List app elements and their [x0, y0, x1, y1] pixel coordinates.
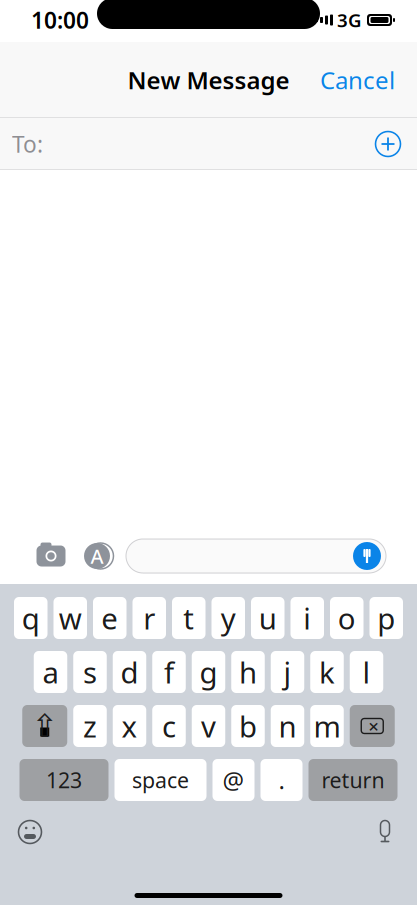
button[interactable]: s: [73, 651, 107, 693]
button[interactable]: .: [260, 759, 302, 801]
button[interactable]: @: [212, 759, 254, 801]
staticText: t: [183, 598, 194, 637]
staticText: q: [22, 598, 40, 637]
button[interactable]: c: [152, 705, 186, 747]
staticText: y: [221, 598, 236, 637]
staticText: l: [362, 652, 370, 691]
staticText: k: [319, 652, 335, 691]
button[interactable]: Send: [351, 540, 383, 572]
staticText: v: [201, 706, 216, 745]
staticText: To:: [12, 129, 43, 159]
staticText: return: [321, 766, 384, 794]
staticText: u: [259, 598, 277, 637]
button[interactable]: u: [251, 597, 284, 639]
button[interactable]: x: [113, 705, 146, 747]
button[interactable]: k: [310, 651, 344, 693]
button[interactable]: y: [211, 597, 245, 639]
button[interactable]: h: [231, 651, 265, 693]
button[interactable]: n: [271, 705, 304, 747]
staticText: 123: [46, 766, 82, 794]
button[interactable]: Delete: [350, 705, 395, 747]
button[interactable]: 123: [19, 759, 108, 801]
staticText: e: [101, 598, 118, 637]
staticText: New Message: [127, 64, 289, 96]
button[interactable]: Camera: [30, 535, 72, 577]
button[interactable]: Emoji: [8, 810, 52, 854]
button[interactable]: Dictation: [363, 810, 407, 854]
staticText: 3G: [337, 8, 362, 32]
staticText: o: [338, 598, 356, 637]
button[interactable]: v: [192, 705, 225, 747]
button[interactable]: e: [93, 597, 126, 639]
staticText: .: [278, 764, 284, 796]
staticText: z: [83, 706, 97, 745]
staticText: c: [162, 706, 176, 745]
button[interactable]: q: [14, 597, 47, 639]
button[interactable]: z: [73, 705, 107, 747]
button[interactable]: return: [308, 759, 397, 801]
staticText: ×: [368, 714, 379, 738]
staticText: m: [313, 706, 340, 745]
button[interactable]: m: [310, 705, 344, 747]
button[interactable]: l: [350, 651, 383, 693]
staticText: 10:00: [31, 5, 89, 35]
button[interactable]: g: [192, 651, 225, 693]
button[interactable]: i: [290, 597, 324, 639]
staticText: A: [90, 543, 103, 569]
staticText: x: [121, 706, 137, 745]
staticText: s: [83, 652, 97, 691]
staticText: p: [377, 598, 395, 637]
staticText: space: [132, 766, 189, 794]
staticText: f: [164, 652, 174, 691]
button[interactable]: a: [34, 651, 67, 693]
button[interactable]: b: [231, 705, 265, 747]
staticText: h: [239, 652, 257, 691]
button[interactable]: r: [132, 597, 166, 639]
staticText: i: [303, 598, 311, 637]
button[interactable]: j: [271, 651, 304, 693]
button[interactable]: Shift: [22, 705, 67, 747]
button[interactable]: Cancel: [304, 54, 411, 106]
staticText: a: [42, 652, 58, 691]
staticText: d: [120, 652, 138, 691]
staticText: n: [278, 706, 296, 745]
staticText: @: [222, 764, 244, 796]
staticText: ⇧: [31, 708, 58, 744]
button[interactable]: Add contact: [366, 122, 410, 166]
button[interactable]: t: [172, 597, 205, 639]
staticText: Cancel: [320, 64, 395, 96]
button[interactable]: f: [152, 651, 186, 693]
staticText: w: [59, 598, 82, 637]
staticText: b: [239, 706, 257, 745]
staticText: r: [143, 598, 155, 637]
staticText: g: [199, 652, 217, 691]
button[interactable]: w: [53, 597, 87, 639]
button[interactable]: o: [330, 597, 363, 639]
button[interactable]: d: [113, 651, 146, 693]
staticText: j: [283, 652, 291, 691]
button[interactable]: p: [369, 597, 403, 639]
button[interactable]: Apps: [76, 535, 118, 577]
button[interactable]: space: [114, 759, 206, 801]
